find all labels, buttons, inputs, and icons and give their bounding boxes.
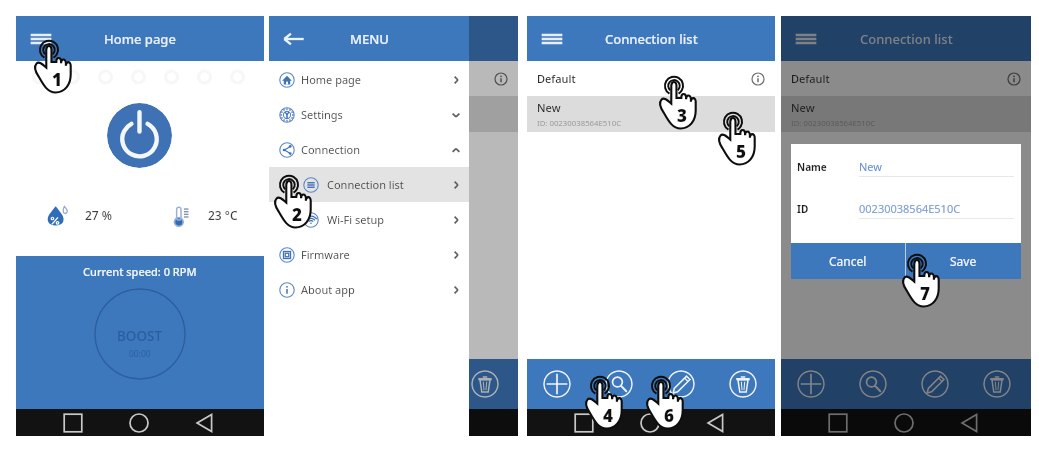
staticText: 6	[664, 404, 674, 427]
button[interactable]: Add	[543, 370, 571, 398]
staticText: ID	[797, 202, 809, 216]
staticText: New	[279, 100, 303, 115]
staticText: 7	[920, 282, 930, 305]
button[interactable]: Settings	[269, 97, 469, 132]
staticText: 4	[603, 404, 613, 427]
staticText: Default	[791, 71, 830, 86]
button[interactable]: Recents	[62, 412, 84, 434]
staticText: MENU	[350, 30, 389, 48]
other: Info	[1007, 72, 1021, 86]
button[interactable]: Default	[781, 61, 1031, 96]
button[interactable]: Back	[705, 412, 727, 434]
staticText: 1	[52, 68, 62, 91]
staticText: Settings	[301, 107, 343, 122]
staticText: Connection list	[347, 30, 440, 48]
button[interactable]: BOOST	[94, 288, 186, 380]
staticText: BOOST	[117, 327, 163, 345]
button[interactable]: Search	[859, 370, 887, 398]
staticText: Default	[537, 71, 576, 86]
staticText: New	[537, 100, 561, 115]
button[interactable]: Back	[194, 412, 216, 434]
button[interactable]: Menu	[795, 29, 817, 49]
button[interactable]: Default	[269, 61, 518, 96]
button[interactable]: Default	[527, 61, 775, 96]
button[interactable]: Recents	[827, 412, 849, 434]
staticText: 00:00	[129, 348, 151, 360]
staticText: 00230038564E510C	[859, 201, 961, 216]
button[interactable]: Home	[893, 412, 915, 434]
button[interactable]: Search	[605, 370, 633, 398]
button[interactable]: Menu	[30, 29, 52, 49]
other: Info	[494, 72, 508, 86]
button[interactable]: Recents	[573, 412, 595, 434]
button[interactable]: Edit	[667, 370, 695, 398]
staticText: Home page	[301, 72, 362, 87]
staticText: Wi-Fi setup	[327, 212, 385, 227]
staticText: Connection list	[605, 30, 698, 48]
staticText: Connection list	[860, 30, 953, 48]
button[interactable]: Cancel	[791, 243, 905, 279]
button[interactable]: Home page	[269, 62, 469, 97]
staticText: New	[859, 159, 882, 174]
button[interactable]: About app	[269, 272, 469, 307]
button[interactable]: Connection list	[269, 167, 469, 202]
staticText: ID: 00230038564E510C	[537, 118, 622, 129]
staticText: 27 %	[85, 207, 113, 223]
staticText: Connection list	[327, 177, 404, 192]
button[interactable]: Delete	[729, 370, 757, 398]
staticText: Home page	[104, 30, 176, 48]
button[interactable]: Add	[797, 370, 825, 398]
other: Info	[751, 72, 765, 86]
button[interactable]: Delete	[471, 370, 499, 398]
button[interactable]: New	[781, 96, 1031, 132]
button[interactable]: Save	[906, 243, 1021, 279]
staticText: 23 °C	[208, 207, 238, 223]
staticText: About app	[301, 282, 355, 297]
staticText: New	[791, 100, 815, 115]
button[interactable]: Edit	[921, 370, 949, 398]
button[interactable]: Menu	[541, 29, 563, 49]
staticText: 2	[292, 203, 302, 226]
staticText: Name	[797, 160, 827, 174]
button[interactable]: New	[269, 96, 518, 132]
button[interactable]: Back	[283, 29, 305, 49]
staticText: 3	[677, 104, 687, 127]
button[interactable]: Home	[639, 412, 661, 434]
button[interactable]: Menu	[283, 29, 305, 49]
staticText: Current speed: 0 RPM	[83, 264, 197, 279]
staticText: 5	[736, 140, 746, 163]
button[interactable]: Back	[959, 412, 981, 434]
staticText: Firmware	[301, 247, 350, 262]
button[interactable]: Connection	[269, 132, 469, 167]
button[interactable]: Home	[128, 412, 150, 434]
button[interactable]: Delete	[983, 370, 1011, 398]
button[interactable]: Firmware	[269, 237, 469, 272]
button[interactable]: Power	[107, 103, 172, 168]
button[interactable]: New	[527, 96, 775, 132]
staticText: Connection	[301, 142, 360, 157]
staticText: ID: 00230038564E510C	[791, 118, 876, 129]
staticText: Default	[279, 71, 318, 86]
staticText: ID: 00230038564E510C	[279, 118, 364, 129]
staticText: Cancel	[829, 253, 867, 269]
staticText: Save	[950, 253, 977, 269]
button[interactable]: Wi-Fi setup	[269, 202, 469, 237]
